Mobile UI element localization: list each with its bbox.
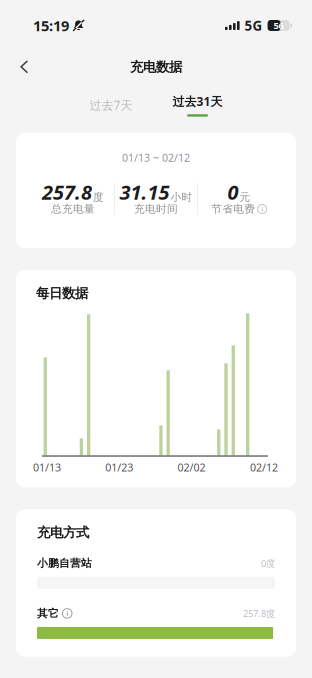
staticText: 31.15 [119,179,169,205]
staticText: 每日数据 [36,285,88,301]
button[interactable]: 过去7天 [89,92,132,118]
button[interactable]: Back [0,53,54,81]
staticText: 257.8度 [243,607,275,620]
staticText: 充电时间 [134,202,178,215]
staticText: 257.8 [42,179,92,205]
staticText: 小时 [170,191,192,204]
staticText: 5G [245,17,263,34]
staticText: 过去31天 [172,93,222,109]
staticText: 总充电量 [51,202,95,215]
staticText: 15:19 [33,16,69,35]
staticText: 56 [274,19,284,32]
staticText: 01/23 [105,460,133,475]
button[interactable]: 过去31天 [172,92,222,118]
staticText: 0度 [261,557,275,569]
staticText: 01/13 ~ 02/12 [122,150,190,165]
staticText: 小鹏自营站 [37,557,92,570]
staticText: 元 [239,191,250,204]
staticText: 01/13 [33,460,61,475]
staticText: 充电方式 [37,524,89,541]
staticText: 02/02 [178,460,206,475]
staticText: 过去7天 [89,97,132,113]
staticText: 充电数据 [130,59,182,75]
staticText: 02/12 [250,460,278,475]
staticText: 其它 [37,607,59,620]
staticText: 节省电费 [211,202,255,215]
staticText: 度 [93,191,104,204]
staticText: 0 [227,179,238,205]
